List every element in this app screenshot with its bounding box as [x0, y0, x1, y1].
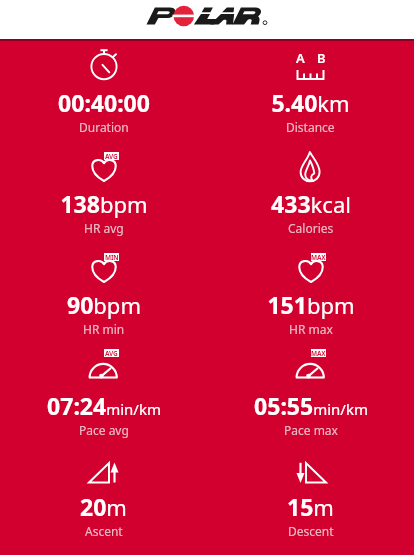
staticText: 138bpm	[60, 188, 148, 219]
staticText: HR avg	[84, 220, 124, 236]
staticText: Distance	[286, 119, 335, 135]
staticText: MIN	[105, 253, 119, 261]
staticText: 00:40:00	[58, 87, 150, 118]
button[interactable]: 20m	[0, 445, 207, 546]
staticText: 151bpm	[267, 289, 355, 320]
button[interactable]: A	[207, 41, 414, 142]
button[interactable]: 00:40:00	[0, 41, 207, 142]
staticText: 20m	[80, 491, 127, 522]
button[interactable]: AVG	[0, 142, 207, 243]
staticText: Descent	[288, 523, 334, 539]
staticText: 433kcal	[271, 188, 351, 219]
staticText: Pace avg	[79, 422, 129, 438]
staticText: 90bpm	[67, 289, 141, 320]
button[interactable]: MIN	[0, 243, 207, 344]
staticText: A	[296, 49, 305, 67]
button[interactable]: Polar	[0, 0, 414, 39]
staticText: HR max	[289, 321, 333, 337]
staticText: 05:55min/km	[254, 390, 368, 421]
staticText: HR min	[83, 321, 125, 337]
staticText: Calories	[288, 220, 334, 236]
button[interactable]: AVG	[0, 344, 207, 445]
button[interactable]: 15m	[207, 445, 414, 546]
staticText: Duration	[79, 119, 129, 135]
staticText: 15m	[287, 491, 334, 522]
button[interactable]: 433kcal	[207, 142, 414, 243]
staticText: Pace max	[284, 422, 338, 438]
staticText: AVG	[105, 152, 118, 160]
staticText: MAX	[311, 253, 326, 261]
staticText: 5.40km	[271, 87, 350, 118]
staticText: MAX	[311, 349, 326, 357]
button[interactable]: MAX	[207, 243, 414, 344]
staticText: AVG	[105, 349, 118, 357]
staticText: B	[317, 49, 326, 67]
staticText: Ascent	[85, 523, 123, 539]
button[interactable]: MAX	[207, 344, 414, 445]
staticText: 07:24min/km	[47, 390, 161, 421]
